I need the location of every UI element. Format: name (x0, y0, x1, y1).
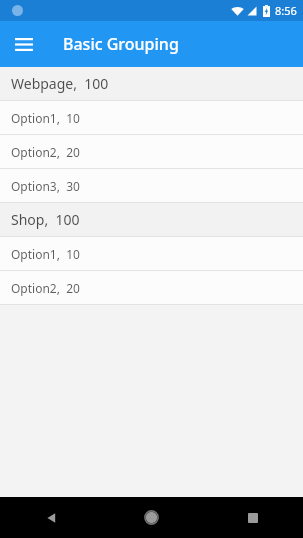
button[interactable]: Option1, 10 (0, 101, 303, 134)
button[interactable]: Back (0, 497, 101, 538)
staticText: Option1, 10 (11, 110, 80, 126)
button[interactable]: Option3, 30 (0, 169, 303, 202)
button[interactable]: Option2, 20 (0, 135, 303, 168)
button[interactable]: Webpage, 100 (0, 67, 303, 100)
staticText: Shop, 100 (11, 210, 80, 229)
staticText: Option3, 30 (11, 178, 80, 194)
button[interactable]: Recent apps (202, 497, 303, 538)
staticText: Option1, 10 (11, 246, 80, 262)
staticText: Option2, 20 (11, 144, 80, 160)
staticText: 8:56 (275, 3, 297, 18)
button[interactable]: Option1, 10 (0, 237, 303, 270)
button[interactable]: Open navigation drawer (7, 27, 41, 61)
staticText: Option2, 20 (11, 280, 80, 296)
staticText: Basic Grouping (63, 33, 179, 55)
button[interactable]: Home (101, 497, 202, 538)
button[interactable]: Option2, 20 (0, 271, 303, 304)
button[interactable]: Shop, 100 (0, 203, 303, 236)
staticText: Webpage, 100 (11, 74, 109, 93)
